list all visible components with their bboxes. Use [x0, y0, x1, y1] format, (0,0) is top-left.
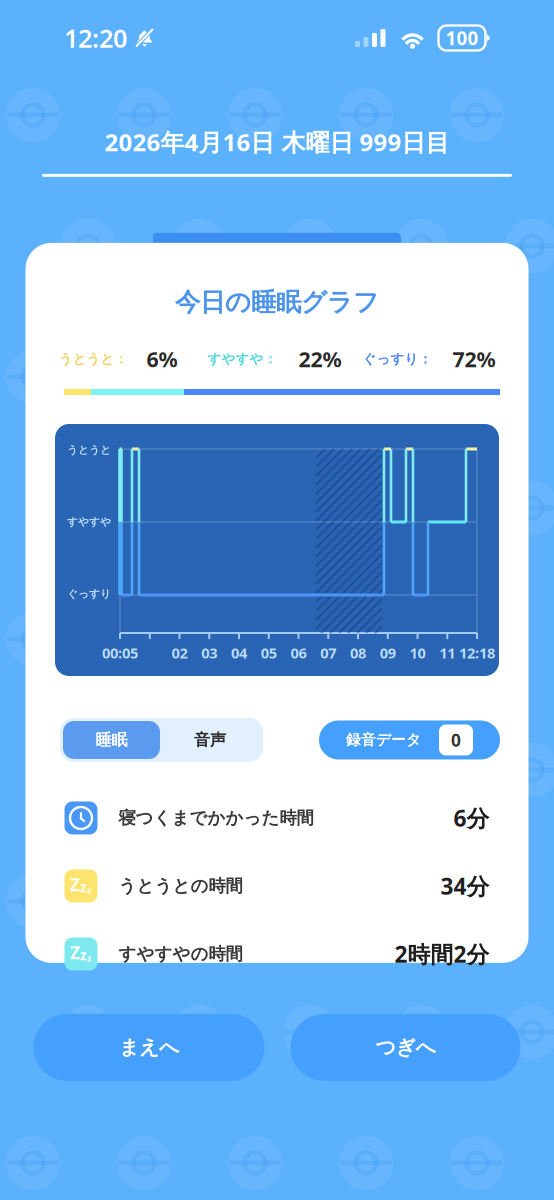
staticText: 07 [320, 643, 336, 662]
staticText: 05 [261, 643, 277, 662]
staticText: うとうと [67, 443, 111, 456]
staticText: 09 [380, 643, 396, 662]
staticText: すやすや： [207, 351, 276, 367]
button[interactable]: まえへ [33, 1014, 264, 1081]
staticText: うとうとの時間 [118, 875, 242, 897]
staticText: 10 [409, 643, 425, 662]
staticText: z [80, 878, 87, 896]
staticText: z [80, 946, 87, 964]
staticText: 2時間2分 [394, 939, 489, 969]
staticText: 12:20 [64, 21, 127, 55]
staticText: つぎへ [375, 1035, 435, 1060]
button[interactable]: 録音データ [319, 720, 500, 759]
staticText: まえへ [119, 1035, 179, 1060]
button[interactable]: 睡眠 [63, 721, 160, 759]
button[interactable]: Z [55, 920, 498, 988]
staticText: 録音データ [346, 731, 421, 749]
staticText: すやすやの時間 [118, 943, 242, 965]
staticText: ぐっすり [67, 587, 111, 600]
staticText: 2026年4月16日 木曜日 999日目 [104, 126, 449, 158]
button[interactable]: 音声 [160, 721, 260, 759]
button[interactable]: 寝つくまでかかった時間 [55, 784, 498, 852]
staticText: 今日の睡眠グラフ [175, 287, 379, 318]
staticText: 00:05 [102, 643, 138, 662]
staticText: 72% [452, 345, 495, 373]
staticText: ぐっすり： [362, 351, 431, 367]
staticText: 6分 [453, 803, 489, 833]
staticText: 0 [451, 728, 461, 751]
staticText: 06 [290, 643, 306, 662]
staticText: 08 [350, 643, 366, 662]
staticText: z [87, 884, 92, 896]
staticText: 睡眠 [95, 730, 127, 750]
staticText: すやすや [67, 515, 111, 528]
staticText: 02 [171, 643, 187, 662]
staticText: 音声 [194, 730, 226, 750]
staticText: うとうと： [58, 351, 127, 367]
staticText: Z [70, 873, 80, 896]
button[interactable]: つぎへ [290, 1014, 520, 1081]
staticText: Z [70, 941, 80, 964]
staticText: 12:18 [459, 643, 495, 662]
staticText: 04 [231, 643, 247, 662]
staticText: 34分 [440, 871, 489, 901]
staticText: z [87, 952, 92, 964]
staticText: 11 [439, 643, 455, 662]
staticText: 6% [146, 345, 177, 373]
button[interactable]: Z [55, 852, 498, 920]
staticText: 03 [201, 643, 217, 662]
staticText: 22% [298, 345, 341, 373]
staticText: 寝つくまでかかった時間 [118, 807, 313, 829]
staticText: 100 [445, 26, 478, 50]
